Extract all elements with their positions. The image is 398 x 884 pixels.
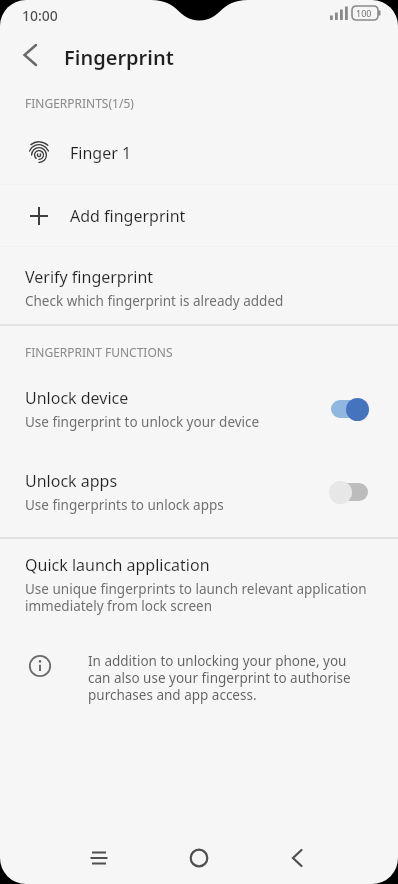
button[interactable]	[329, 479, 369, 505]
staticText: Quick launch application	[25, 554, 210, 576]
staticText: Fingerprint	[64, 44, 174, 71]
button[interactable]: Add fingerprint	[0, 185, 398, 246]
staticText: Check which fingerprint is already added	[25, 292, 284, 310]
staticText: Verify fingerprint	[25, 266, 154, 288]
staticText: FINGERPRINTS(1/5)	[25, 95, 134, 111]
button[interactable]: Finger 1	[0, 122, 398, 184]
staticText: FINGERPRINT FUNCTIONS	[25, 344, 173, 360]
button[interactable]: Verify fingerprint	[0, 258, 398, 322]
button[interactable]	[329, 396, 369, 422]
button[interactable]: Unlock apps	[0, 463, 398, 521]
staticText: Unlock apps	[25, 470, 118, 492]
button[interactable]: Unlock device	[0, 380, 398, 438]
staticText: Finger 1	[70, 142, 132, 164]
staticText: Unlock device	[25, 387, 129, 409]
button[interactable]: Quick launch application	[0, 552, 398, 621]
button[interactable]	[175, 834, 223, 882]
staticText: Use fingerprints to unlock apps	[25, 496, 224, 514]
button[interactable]	[8, 33, 52, 77]
staticText: Add fingerprint	[70, 205, 186, 227]
button[interactable]	[75, 834, 123, 882]
staticText: Use fingerprint to unlock your device	[25, 413, 260, 431]
staticText: In addition to unlocking your phone, you…	[88, 652, 366, 704]
staticText: Use unique fingerprints to launch releva…	[25, 580, 373, 615]
button[interactable]	[273, 834, 321, 882]
staticText: 100	[356, 7, 372, 19]
staticText: 10:00	[22, 6, 58, 25]
